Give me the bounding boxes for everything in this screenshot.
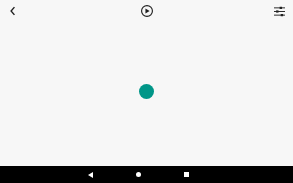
button[interactable]: Back xyxy=(3,1,23,21)
button[interactable]: Back xyxy=(75,166,105,183)
button[interactable]: Settings xyxy=(269,1,289,21)
button[interactable]: Recent apps xyxy=(171,166,201,183)
button[interactable]: Home xyxy=(123,166,153,183)
button[interactable]: Color swatch xyxy=(131,76,162,107)
button[interactable]: Play xyxy=(137,1,157,21)
